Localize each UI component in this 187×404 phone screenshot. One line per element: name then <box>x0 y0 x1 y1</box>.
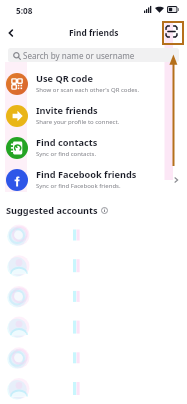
button[interactable]: Search by name or username <box>8 48 179 62</box>
staticText: 5:08 <box>16 5 33 16</box>
staticText: Suggested accounts <box>6 204 98 217</box>
staticText: Sync or find Facebook friends. <box>36 182 121 190</box>
staticText: Find contacts <box>36 136 98 149</box>
button[interactable]: Use QR code <box>0 68 187 100</box>
staticText: Invite friends <box>36 104 98 117</box>
button[interactable]: Scan QR code <box>161 21 181 41</box>
staticText: Search by name or username <box>23 50 135 61</box>
staticText: Share your profile to connect. <box>36 118 120 126</box>
staticText: Find friends <box>69 27 119 38</box>
button[interactable]: Find contacts <box>0 132 187 164</box>
button[interactable]: Find Facebook friends <box>0 164 187 196</box>
staticText: Use QR code <box>36 72 93 85</box>
staticText: Find Facebook friends <box>36 168 137 181</box>
staticText: Sync or find contacts. <box>36 150 97 158</box>
button[interactable]: Invite friends <box>0 100 187 132</box>
staticText: Show or scan each other's QR codes. <box>36 86 139 94</box>
button[interactable]: Back <box>0 20 24 46</box>
